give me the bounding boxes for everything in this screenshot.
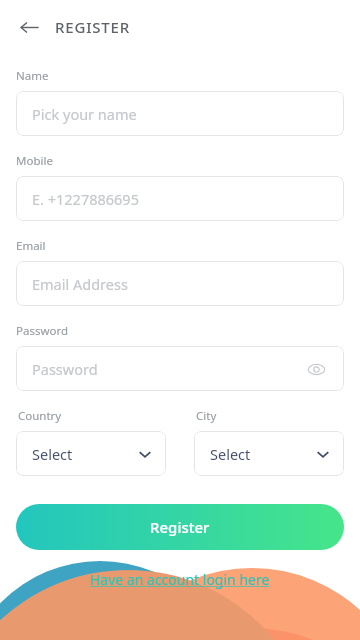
staticText: Select xyxy=(210,444,251,464)
button[interactable]: Select xyxy=(194,431,344,476)
button[interactable]: Pick your name xyxy=(16,91,344,136)
staticText: REGISTER xyxy=(55,17,130,37)
staticText: Password xyxy=(32,359,98,379)
staticText: Have an account login here xyxy=(90,570,270,589)
staticText: City xyxy=(196,408,217,424)
staticText: Email Address xyxy=(32,274,128,294)
staticText: Pick your name xyxy=(32,104,137,124)
button[interactable]: Back xyxy=(16,14,42,40)
staticText: E. +1227886695 xyxy=(32,189,139,209)
button[interactable]: Email Address xyxy=(16,261,344,306)
staticText: Mobile xyxy=(16,153,53,169)
staticText: Password xyxy=(16,323,69,339)
staticText: Name xyxy=(16,68,49,84)
staticText: Register xyxy=(150,517,210,537)
button[interactable]: Register xyxy=(16,504,344,550)
button[interactable]: Have an account login here xyxy=(86,568,274,591)
button[interactable]: E. +1227886695 xyxy=(16,176,344,221)
staticText: Country xyxy=(18,408,62,424)
button[interactable]: Show password xyxy=(304,357,328,381)
button[interactable]: Select xyxy=(16,431,166,476)
button[interactable]: Password xyxy=(16,346,344,391)
staticText: Select xyxy=(32,444,73,464)
staticText: Email xyxy=(16,238,46,254)
